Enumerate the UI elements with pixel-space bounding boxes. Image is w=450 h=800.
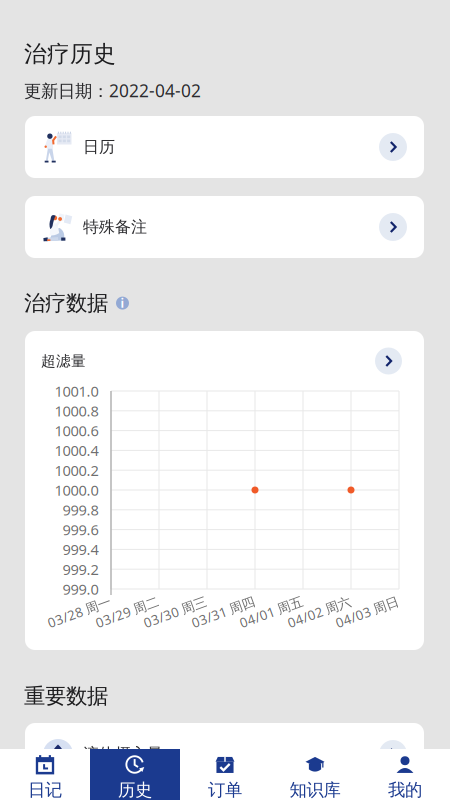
button[interactable]: 历史 bbox=[90, 749, 180, 800]
staticText: 1000.2 bbox=[54, 460, 98, 480]
button[interactable]: 日记 bbox=[0, 749, 90, 800]
staticText: i bbox=[120, 295, 124, 311]
staticText: 04/03 周日 bbox=[334, 603, 400, 621]
staticText: 03/29 周二 bbox=[94, 603, 160, 621]
staticText: 999.4 bbox=[62, 540, 98, 559]
staticText: 订单 bbox=[208, 779, 242, 800]
staticText: 知识库 bbox=[289, 779, 340, 800]
staticText: 日记 bbox=[28, 779, 62, 800]
staticText: 治疗数据 bbox=[24, 290, 108, 316]
staticText: 1000.4 bbox=[54, 441, 98, 460]
staticText: 1000.6 bbox=[54, 421, 98, 440]
staticText: 04/01 周五 bbox=[238, 603, 304, 621]
button[interactable]: 超滤量 bbox=[25, 331, 424, 391]
staticText: 1000.8 bbox=[54, 401, 98, 421]
staticText: 更新日期：2022-04-02 bbox=[24, 79, 201, 102]
button[interactable]: 订单 bbox=[180, 749, 270, 800]
staticText: 1000.0 bbox=[54, 480, 98, 500]
button[interactable]: 日历 bbox=[25, 116, 424, 178]
staticText: 我的 bbox=[388, 779, 422, 800]
button[interactable]: 知识库 bbox=[270, 749, 360, 800]
staticText: 历史 bbox=[118, 779, 152, 800]
staticText: 超滤量 bbox=[41, 352, 86, 370]
staticText: 重要数据 bbox=[24, 683, 108, 709]
staticText: 治疗历史 bbox=[24, 40, 116, 68]
button[interactable]: 液体摄入量 bbox=[25, 723, 424, 785]
staticText: 1001.0 bbox=[54, 381, 98, 401]
staticText: 999.0 bbox=[62, 579, 98, 599]
staticText: 03/28 周一 bbox=[46, 603, 112, 621]
staticText: 03/30 周三 bbox=[142, 603, 208, 621]
button[interactable]: 我的 bbox=[360, 749, 450, 800]
staticText: 液体摄入量 bbox=[83, 744, 163, 764]
staticText: 03/31 周四 bbox=[190, 603, 256, 621]
staticText: 特殊备注 bbox=[83, 217, 147, 237]
staticText: 04/02 周六 bbox=[286, 603, 352, 621]
button[interactable]: 特殊备注 bbox=[25, 196, 424, 258]
staticText: 999.8 bbox=[62, 500, 98, 520]
staticText: 日历 bbox=[83, 137, 115, 157]
staticText: 999.2 bbox=[62, 559, 98, 579]
staticText: 999.6 bbox=[62, 520, 98, 539]
